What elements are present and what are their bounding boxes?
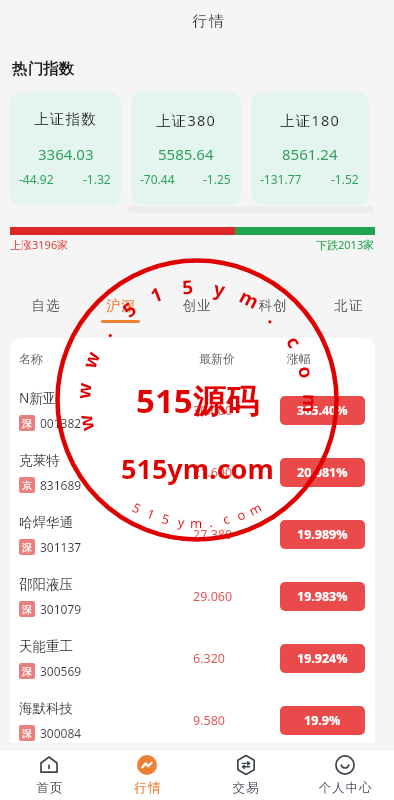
- staticText: 上证180: [280, 110, 340, 130]
- button[interactable]: 海默科技: [10, 689, 375, 743]
- button[interactable]: 个人中心: [295, 751, 394, 800]
- staticText: c: [221, 509, 232, 528]
- staticText: 上证380: [156, 110, 216, 130]
- staticText: 831689: [40, 477, 82, 493]
- button[interactable]: 上证380: [131, 92, 241, 205]
- staticText: .: [263, 306, 285, 329]
- staticText: 深: [22, 541, 32, 554]
- staticText: 沪深: [106, 297, 135, 314]
- staticText: c: [280, 331, 308, 353]
- staticText: 5: [129, 498, 145, 518]
- staticText: m: [235, 283, 264, 315]
- staticText: 深: [22, 727, 32, 740]
- staticText: 交易: [232, 780, 259, 796]
- staticText: 天能重工: [19, 638, 73, 655]
- staticText: 19.983%: [297, 588, 348, 605]
- button[interactable]: 克莱特: [10, 441, 375, 503]
- staticText: 深: [22, 603, 32, 616]
- button[interactable]: 北证: [310, 288, 386, 332]
- staticText: .: [208, 513, 214, 531]
- staticText: -1.52: [331, 171, 359, 187]
- staticText: 行情: [134, 780, 161, 796]
- staticText: 300084: [40, 725, 82, 741]
- staticText: w: [76, 347, 106, 372]
- staticText: 001382: [40, 415, 82, 431]
- staticText: 邵阳液压: [19, 576, 73, 593]
- staticText: w: [71, 412, 100, 433]
- staticText: 3364.03: [38, 144, 94, 164]
- button[interactable]: 沪深: [83, 288, 158, 332]
- staticText: m: [297, 394, 323, 413]
- staticText: 1: [144, 504, 158, 524]
- button[interactable]: 创业: [158, 288, 234, 332]
- button[interactable]: 自选: [8, 288, 83, 332]
- staticText: 21.600: [193, 464, 233, 481]
- button[interactable]: 交易: [196, 751, 295, 800]
- staticText: m: [190, 514, 203, 532]
- staticText: 创业: [182, 297, 211, 314]
- staticText: 20.081%: [297, 464, 348, 481]
- staticText: 海默科技: [19, 700, 73, 717]
- button[interactable]: 科创: [234, 288, 310, 332]
- staticText: -1.32: [83, 171, 111, 187]
- staticText: 19.924%: [297, 650, 348, 667]
- staticText: y: [177, 513, 186, 531]
- staticText: 科创: [258, 297, 287, 314]
- staticText: N新亚: [19, 389, 57, 407]
- staticText: 首页: [36, 780, 63, 796]
- staticText: 行情: [191, 12, 225, 30]
- button[interactable]: N新亚: [10, 379, 375, 441]
- staticText: 515源码: [136, 378, 259, 423]
- staticText: 最新价: [199, 351, 235, 366]
- staticText: -70.44: [140, 171, 175, 187]
- staticText: 自选: [31, 297, 60, 314]
- staticText: 京: [22, 479, 32, 492]
- staticText: 北证: [334, 297, 363, 314]
- button[interactable]: 上证180: [251, 92, 369, 205]
- staticText: 深: [22, 665, 32, 678]
- staticText: 27.380: [193, 526, 233, 543]
- staticText: 8561.24: [282, 144, 338, 164]
- staticText: 30.000: [193, 402, 233, 419]
- staticText: 5: [181, 273, 194, 300]
- staticText: o: [234, 505, 248, 525]
- button[interactable]: 邵阳液压: [10, 565, 375, 627]
- staticText: -131.77: [260, 171, 302, 187]
- staticText: 365.40%: [297, 402, 348, 419]
- staticText: 1: [147, 281, 166, 309]
- staticText: 上证指数: [34, 110, 97, 128]
- staticText: m: [245, 498, 265, 520]
- staticText: 名称: [19, 351, 43, 366]
- staticText: 上涨3196家: [10, 237, 69, 252]
- staticText: 个人中心: [318, 780, 372, 796]
- button[interactable]: 首页: [0, 751, 98, 800]
- staticText: .: [94, 322, 118, 342]
- staticText: 301079: [40, 601, 82, 617]
- staticText: 5585.64: [158, 144, 214, 164]
- staticText: 300569: [40, 663, 82, 679]
- staticText: o: [292, 363, 320, 381]
- button[interactable]: 哈焊华通: [10, 503, 375, 565]
- staticText: 19.9%: [304, 712, 341, 729]
- staticText: 哈焊华通: [19, 514, 73, 531]
- button[interactable]: 天能重工: [10, 627, 375, 689]
- staticText: -1.25: [203, 171, 231, 187]
- staticText: 下跌2013家: [316, 237, 375, 252]
- staticText: 5: [160, 509, 172, 529]
- staticText: 热门指数: [12, 59, 74, 79]
- button[interactable]: 行情: [98, 751, 196, 800]
- button[interactable]: 上证指数: [10, 92, 121, 205]
- staticText: y: [212, 275, 227, 303]
- staticText: -44.92: [19, 171, 54, 187]
- staticText: 19.989%: [297, 526, 348, 543]
- staticText: 深: [22, 417, 32, 430]
- staticText: 6.320: [193, 650, 225, 667]
- staticText: 克莱特: [19, 452, 60, 469]
- staticText: 301137: [40, 539, 82, 555]
- staticText: w: [70, 381, 98, 400]
- staticText: 涨幅: [287, 351, 311, 366]
- staticText: 515ym.com: [121, 450, 274, 487]
- staticText: 9.580: [193, 712, 225, 729]
- staticText: 29.060: [193, 588, 233, 605]
- staticText: 5: [117, 296, 142, 323]
